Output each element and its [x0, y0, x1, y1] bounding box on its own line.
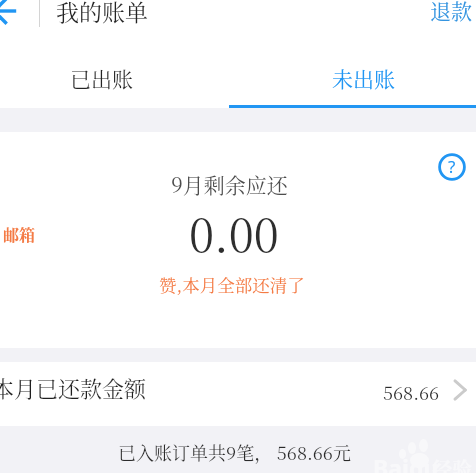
staticText: 0.00: [189, 200, 279, 265]
staticText: 退款: [430, 0, 472, 25]
button[interactable]: 本月已还款金额: [0, 362, 476, 426]
button[interactable]: Help: [438, 153, 466, 181]
staticText: 赞,本月全部还清了: [159, 272, 305, 297]
staticText: 未出账: [332, 63, 395, 93]
button[interactable]: Back: [0, 0, 44, 44]
staticText: 9月剩余应还: [171, 169, 288, 199]
staticText: 我的账单: [56, 0, 148, 28]
button[interactable]: 未出账: [229, 36, 476, 108]
staticText: 568.66: [383, 379, 440, 405]
staticText: 已出账: [70, 63, 133, 93]
staticText: ?: [448, 155, 456, 178]
button[interactable]: 已出账: [0, 36, 229, 108]
button[interactable]: 退款: [420, 0, 476, 31]
staticText: 已入账订单共9笔， 568.66元: [118, 439, 351, 465]
button[interactable]: 邮箱: [3, 223, 36, 246]
staticText: 本月已还款金额: [0, 372, 147, 404]
